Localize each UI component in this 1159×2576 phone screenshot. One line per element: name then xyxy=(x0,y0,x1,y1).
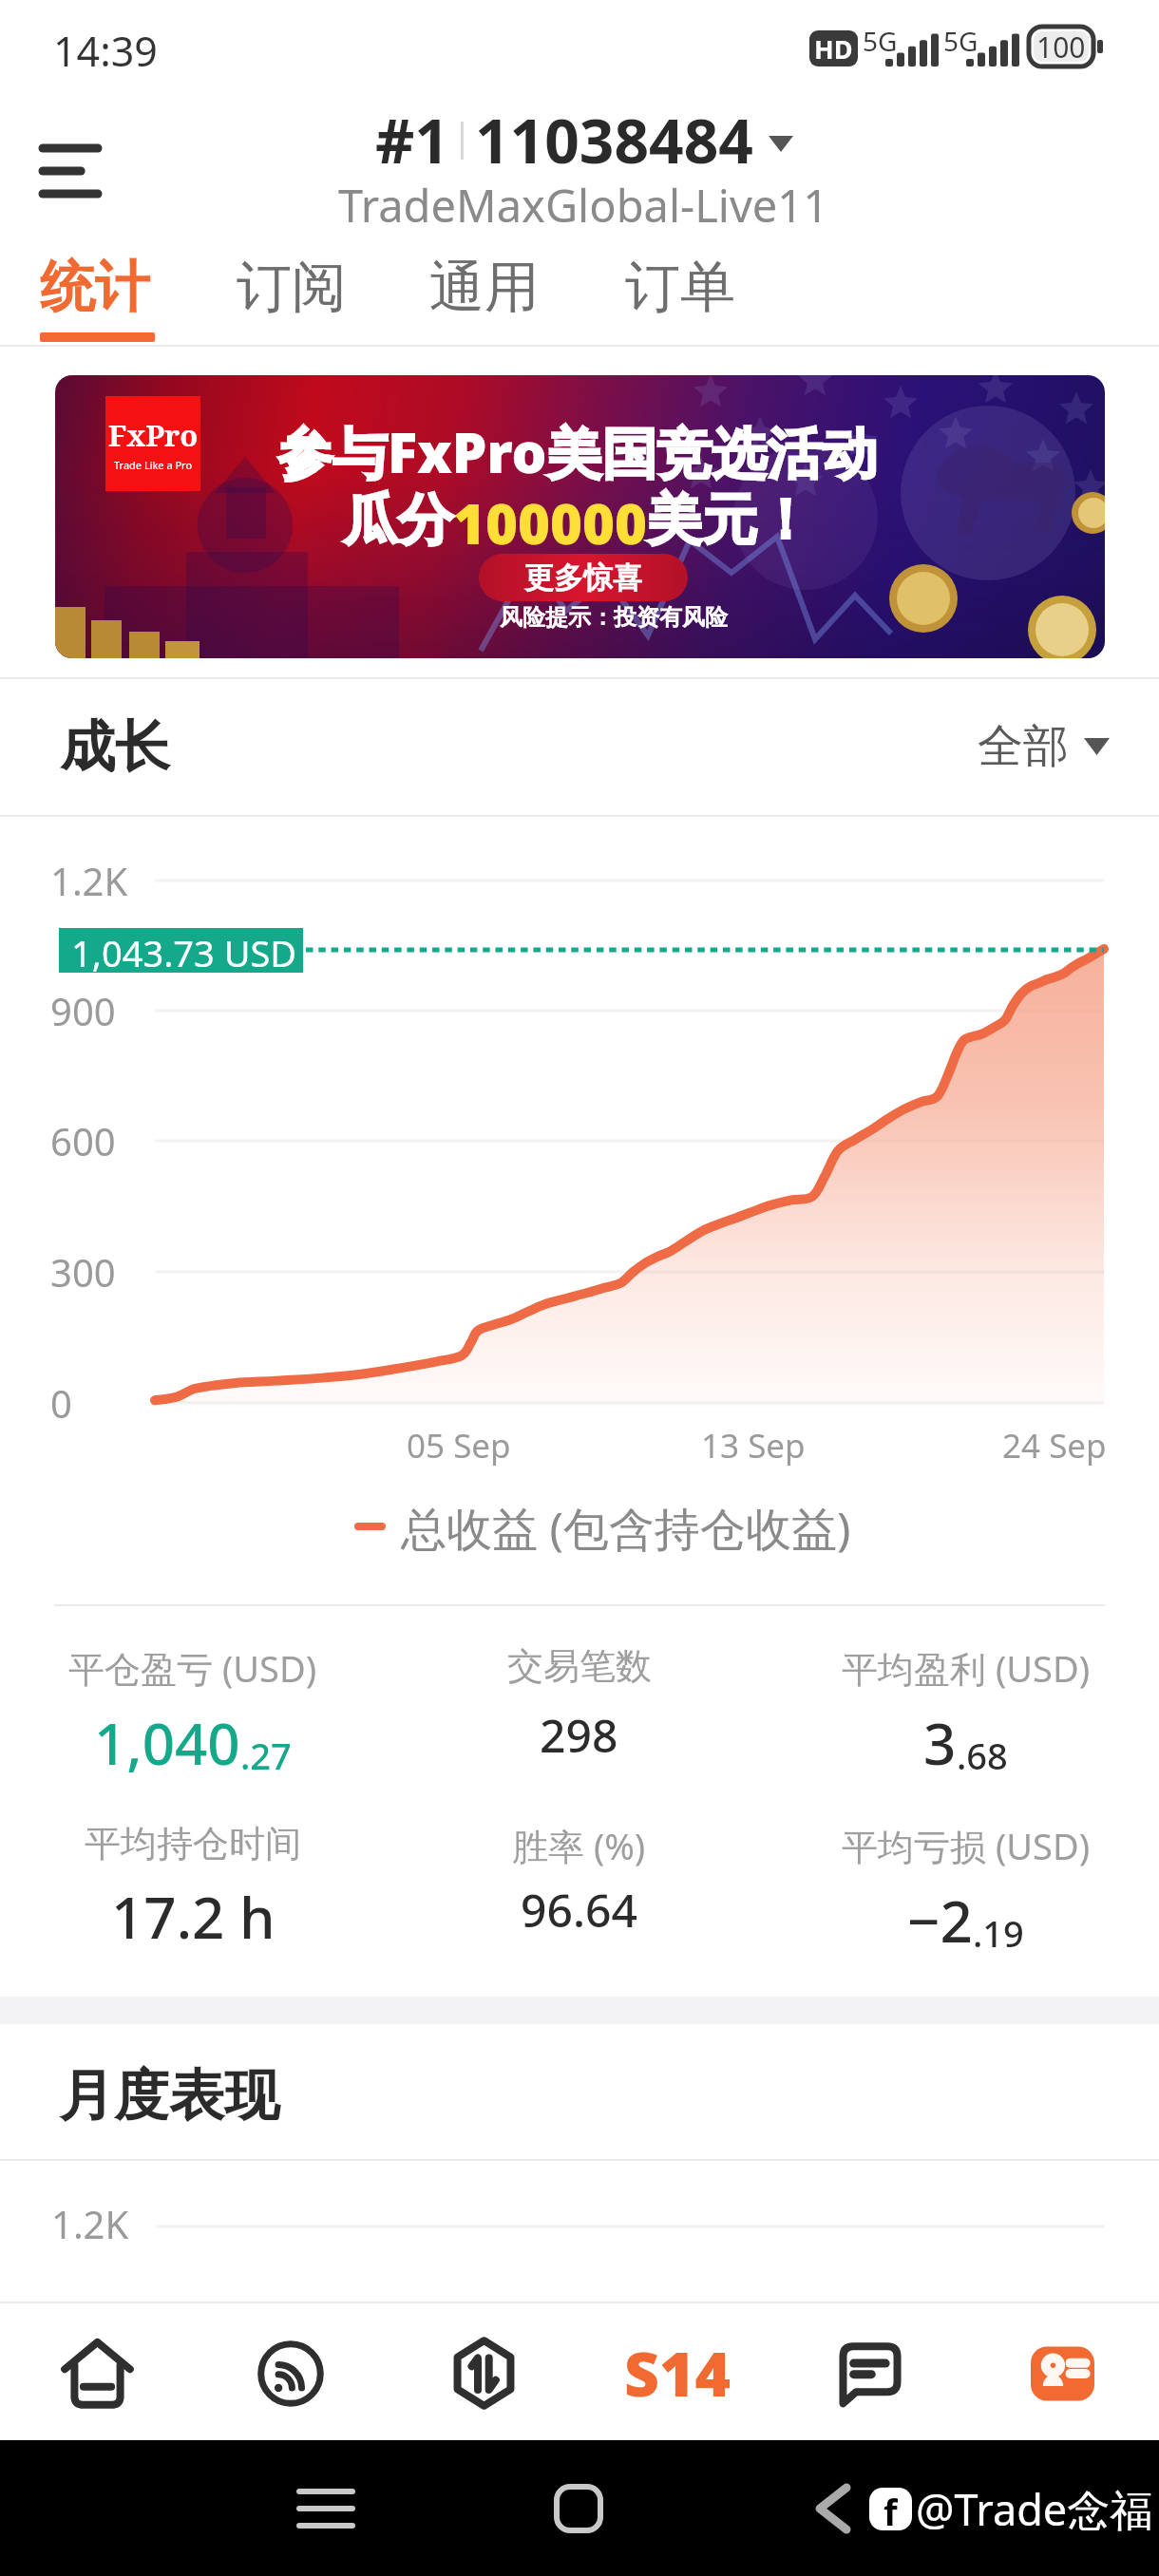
staticText: S14 xyxy=(624,2332,731,2415)
button[interactable]: Profile xyxy=(966,2306,1159,2440)
button[interactable]: Chat xyxy=(773,2306,966,2440)
staticText: 通用 xyxy=(429,253,540,322)
button[interactable]: Menu xyxy=(17,116,123,226)
staticText: 14:39 xyxy=(53,23,158,79)
staticText: 参与FxPro美国竞选活动 xyxy=(277,414,878,489)
staticText: TradeMaxGlobal-Live11 xyxy=(338,175,829,236)
button[interactable]: Trade xyxy=(388,2306,580,2440)
staticText: 1,040 xyxy=(94,1704,240,1782)
staticText: 瓜分 xyxy=(343,485,453,555)
staticText: Trade Like a Pro xyxy=(114,458,193,472)
staticText: 1,043.73 USD xyxy=(71,928,297,973)
staticText: 胜率 (%) xyxy=(512,1821,646,1870)
button[interactable]: Back xyxy=(782,2440,884,2576)
button[interactable]: FxPro promotion banner xyxy=(55,375,1105,658)
staticText: 5G xyxy=(943,23,978,59)
staticText: 300 xyxy=(50,1246,116,1297)
staticText: 平仓盈亏 (USD) xyxy=(68,1643,317,1693)
staticText: 平均盈利 (USD) xyxy=(842,1643,1091,1693)
staticText: @Trade念福 xyxy=(916,2480,1153,2538)
staticText: 24 Sep xyxy=(1002,1423,1107,1468)
button[interactable]: Signals xyxy=(194,2306,388,2440)
staticText: 统计 xyxy=(40,253,150,322)
staticText: 0 xyxy=(50,1377,72,1429)
staticText: 交易笔数 xyxy=(507,1643,652,1689)
button[interactable]: 订单 xyxy=(612,237,750,353)
staticText: f xyxy=(883,2488,898,2529)
staticText: 13 Sep xyxy=(701,1423,806,1468)
staticText: .27 xyxy=(240,1731,292,1780)
button[interactable]: Recents xyxy=(269,2440,383,2576)
button[interactable]: 全部 xyxy=(978,717,1110,776)
staticText: 月度表现 xyxy=(59,2061,279,2131)
staticText: 1.2K xyxy=(50,855,128,906)
staticText: 100 xyxy=(1036,28,1086,66)
staticText: 100000 xyxy=(453,485,647,560)
staticText: .19 xyxy=(973,1908,1024,1958)
staticText: 风险提示：投资有风险 xyxy=(500,603,728,632)
button[interactable]: 通用 xyxy=(416,237,555,353)
staticText: 11038484 xyxy=(475,99,753,181)
staticText: #1 xyxy=(375,99,449,181)
staticText: 298 xyxy=(540,1704,618,1766)
staticText: 900 xyxy=(50,985,116,1036)
button[interactable]: 订阅 xyxy=(223,237,362,353)
staticText: 总收益 (包含持仓收益) xyxy=(401,1497,851,1556)
staticText: 更多惊喜 xyxy=(524,559,642,597)
staticText: 订单 xyxy=(625,253,735,322)
staticText: 3 xyxy=(923,1704,957,1782)
staticText: 全部 xyxy=(978,718,1069,775)
staticText: 1.2K xyxy=(51,2198,129,2249)
staticText: 订阅 xyxy=(237,253,347,322)
staticText: 平均亏损 (USD) xyxy=(842,1821,1091,1870)
staticText: −2 xyxy=(907,1882,973,1960)
staticText: FxPro xyxy=(108,415,199,455)
staticText: 5G xyxy=(863,23,898,59)
staticText: 平均持仓时间 xyxy=(85,1821,301,1866)
staticText: HD xyxy=(814,31,853,66)
staticText: 17.2 h xyxy=(111,1878,275,1956)
staticText: .68 xyxy=(957,1731,1008,1780)
staticText: 05 Sep xyxy=(407,1423,511,1468)
staticText: 美元！ xyxy=(647,485,812,555)
button[interactable]: Home xyxy=(522,2440,636,2576)
button[interactable]: 总收益 (包含持仓收益) xyxy=(354,1497,851,1556)
button[interactable]: S14 xyxy=(580,2306,773,2440)
staticText: 600 xyxy=(50,1115,116,1166)
staticText: 成长 xyxy=(60,712,170,782)
button[interactable]: Home xyxy=(0,2306,194,2440)
staticText: 96.64 xyxy=(521,1879,637,1941)
button[interactable]: 统计 xyxy=(27,237,165,353)
